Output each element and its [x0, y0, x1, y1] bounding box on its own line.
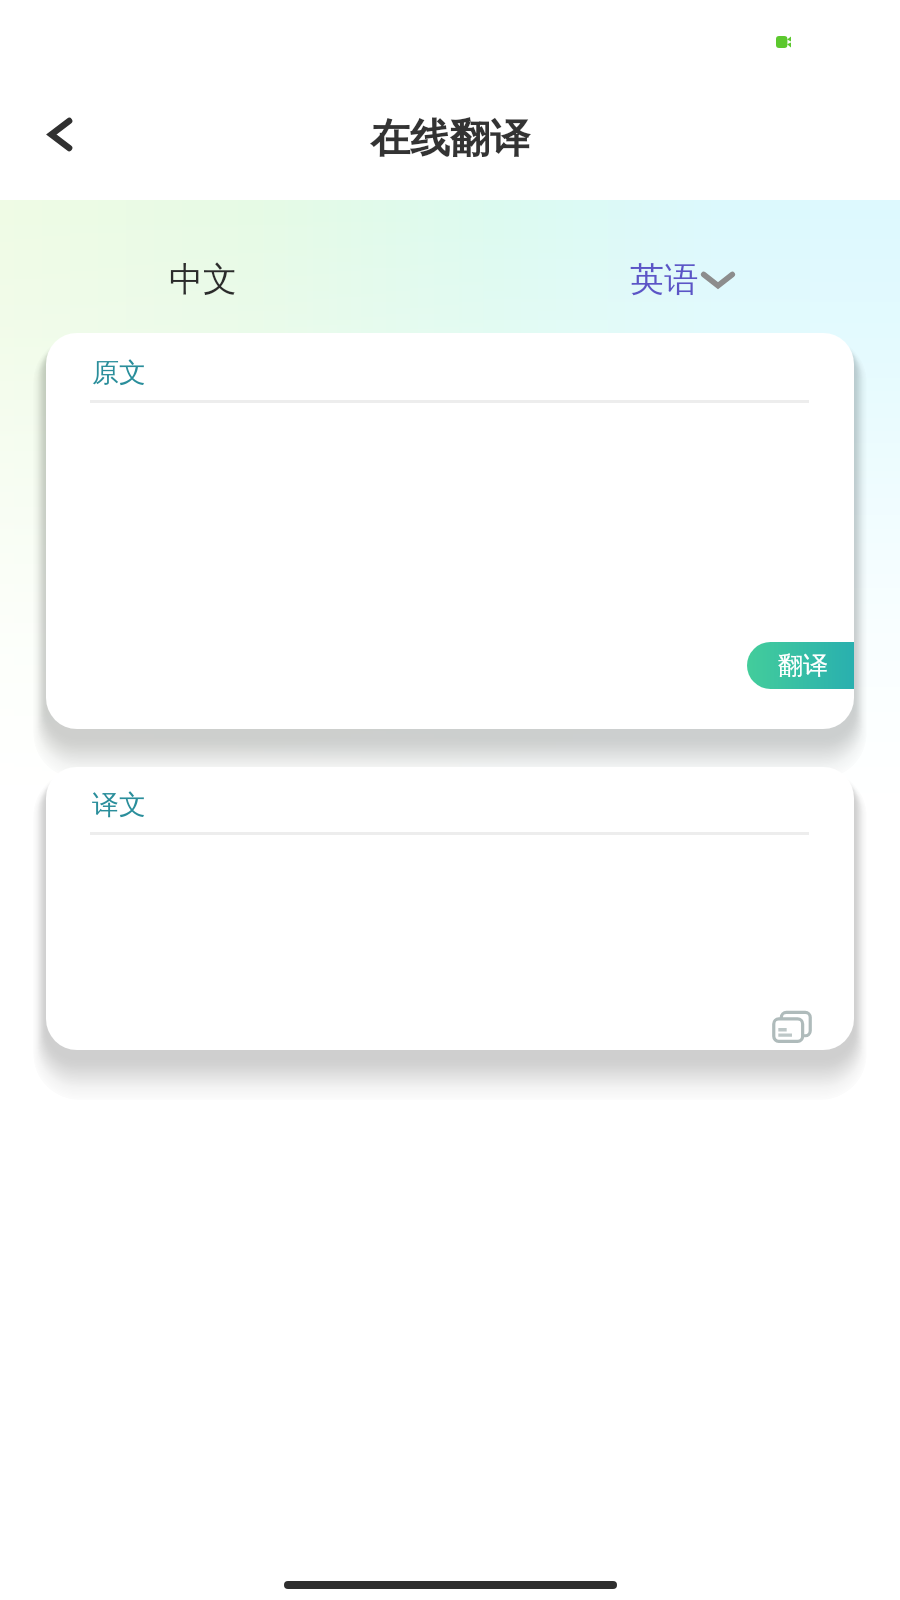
button[interactable]: 中文	[169, 258, 237, 301]
staticText: 中文	[169, 258, 237, 301]
staticText: 在线翻译	[370, 113, 530, 163]
button[interactable]: Copy	[764, 1001, 820, 1050]
staticText: 译文	[92, 788, 146, 822]
staticText: 英语	[630, 258, 698, 301]
staticText: 翻译	[778, 650, 828, 681]
button[interactable]: 英语	[630, 258, 735, 301]
button[interactable]: Back	[30, 104, 90, 164]
staticText: 原文	[92, 356, 146, 390]
button[interactable]: 翻译	[747, 642, 854, 689]
